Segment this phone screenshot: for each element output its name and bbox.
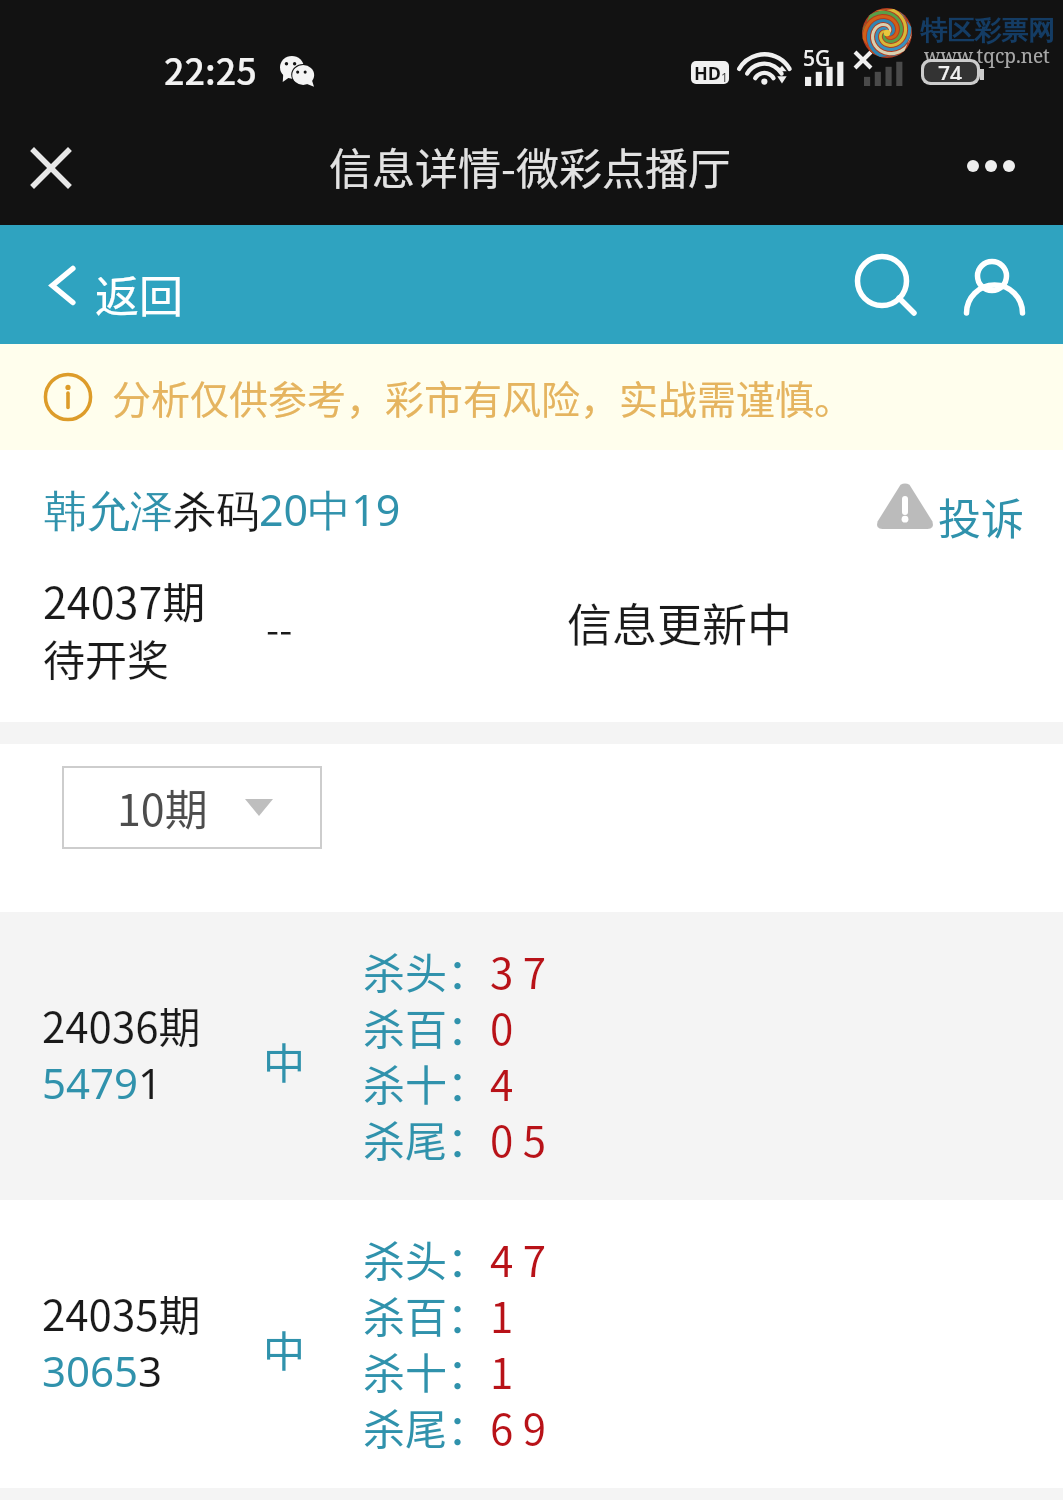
staticText: 54791	[42, 1054, 163, 1111]
staticText: 4 7	[490, 1228, 547, 1289]
staticText: --	[266, 600, 293, 655]
staticText: 分析仅供参考，彩市有风险，实战需谨慎。	[112, 369, 854, 425]
staticText: 中	[263, 1318, 306, 1379]
staticText: 杀头：	[363, 940, 490, 1001]
staticText: 投诉	[938, 485, 1024, 545]
staticText: 24037期	[43, 569, 206, 631]
staticText: 6 9	[490, 1396, 547, 1457]
button[interactable]: 24036期	[0, 912, 1063, 1200]
button[interactable]: 投诉	[873, 482, 1025, 542]
staticText: 特区彩票网	[920, 14, 1055, 48]
staticText: 1	[490, 1284, 514, 1345]
staticText: 返回	[95, 262, 183, 326]
button[interactable]: More options	[960, 135, 1022, 197]
staticText: 3 7	[490, 940, 547, 1001]
staticText: www.tqcp.net	[924, 43, 1050, 69]
staticText: 30653	[42, 1342, 163, 1399]
staticText: 24036期	[42, 994, 201, 1055]
button[interactable]: 10期	[62, 766, 322, 849]
staticText: 中	[263, 1030, 306, 1091]
staticText: 韩允泽杀码20中19	[44, 480, 401, 539]
staticText: 24035期	[42, 1282, 201, 1343]
staticText: 1	[490, 1340, 514, 1401]
staticText: 杀头：	[363, 1228, 490, 1289]
staticText: 待开奖	[43, 627, 170, 688]
staticText: 10期	[117, 776, 208, 838]
button[interactable]: Close	[20, 137, 82, 199]
staticText: HD	[694, 61, 721, 84]
staticText: 信息更新中	[567, 590, 793, 655]
staticText: 杀十：	[363, 1340, 490, 1401]
staticText: 杀尾：	[363, 1396, 490, 1457]
staticText: 杀十：	[363, 1052, 490, 1113]
staticText: 4	[490, 1052, 514, 1113]
staticText: 杀尾：	[363, 1108, 490, 1169]
button[interactable]: 返回	[0, 225, 230, 344]
staticText: 0 5	[490, 1108, 547, 1169]
staticText: 22:25	[164, 43, 257, 95]
button[interactable]: 24035期	[0, 1200, 1063, 1488]
staticText: 74	[938, 62, 963, 80]
staticText: 1	[721, 69, 728, 84]
button[interactable]: Profile	[952, 249, 1032, 329]
staticText: 0	[490, 996, 514, 1057]
staticText: 杀百：	[363, 996, 490, 1057]
staticText: 信息详情-微彩点播厅	[329, 135, 731, 197]
staticText: 杀百：	[363, 1284, 490, 1345]
button[interactable]: Search	[840, 239, 920, 319]
staticText: 5G	[803, 44, 831, 73]
